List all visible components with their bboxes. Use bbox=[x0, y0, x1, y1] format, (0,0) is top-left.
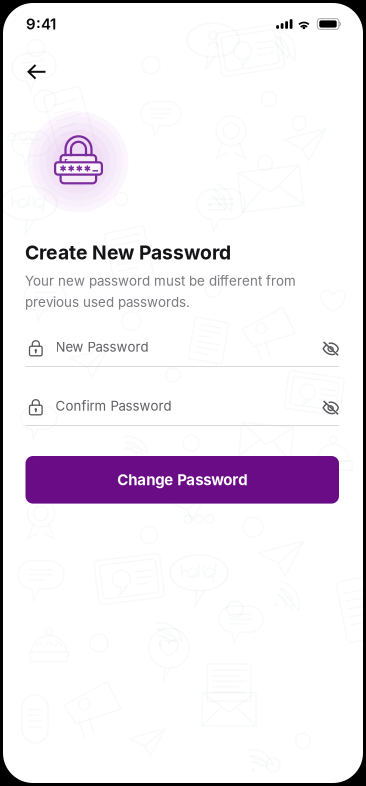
staticText: Your new password must be different from… bbox=[25, 273, 296, 310]
button[interactable]: Show New Password bbox=[322, 340, 339, 354]
button[interactable]: Back bbox=[16, 51, 58, 93]
staticText: Change Password bbox=[117, 471, 247, 489]
staticText: New Password bbox=[55, 339, 148, 355]
button[interactable]: Change Password bbox=[25, 456, 339, 504]
staticText: Confirm Password bbox=[55, 398, 171, 414]
staticText: Create New Password bbox=[25, 241, 231, 264]
button[interactable]: Show Confirm Password bbox=[322, 399, 339, 413]
staticText: 9:41 bbox=[26, 15, 56, 33]
